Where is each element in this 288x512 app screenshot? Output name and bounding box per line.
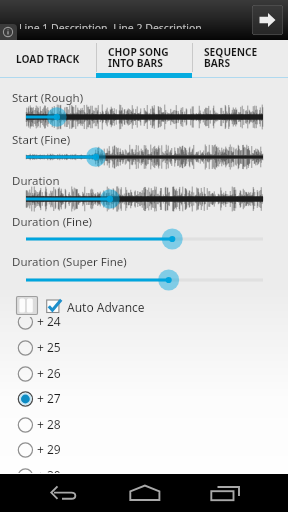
button[interactable]: + 25: [0, 335, 288, 361]
button[interactable]: Home: [110, 474, 188, 512]
staticText: + 28: [37, 416, 61, 432]
staticText: Start (Fine): [12, 132, 71, 148]
button[interactable]: Auto Advance: [44, 296, 154, 316]
button[interactable]: [0, 144, 288, 170]
staticText: + 25: [37, 339, 61, 355]
staticText: Duration (Fine): [12, 214, 93, 230]
button[interactable]: [0, 226, 288, 252]
staticText: Duration: [12, 173, 60, 189]
button[interactable]: Recents: [190, 474, 268, 512]
button[interactable]: + 27: [0, 386, 288, 412]
button[interactable]: + 29: [0, 437, 288, 463]
staticText: Line 1 Description, Line 2 Description: [19, 22, 202, 29]
staticText: + 29: [37, 441, 61, 457]
button[interactable]: + 30: [0, 463, 288, 473]
button[interactable]: [0, 186, 288, 212]
staticText: Duration (Super Fine): [12, 254, 127, 270]
button[interactable]: Pause: [16, 296, 38, 315]
button[interactable]: CHOP SONG INTO BARS: [96, 40, 192, 78]
staticText: CHOP SONG INTO BARS: [108, 45, 169, 70]
staticText: LOAD TRACK: [16, 52, 80, 66]
button[interactable]: LOAD TRACK: [0, 40, 96, 78]
staticText: + 30: [37, 467, 61, 473]
button[interactable]: Back: [24, 474, 102, 512]
staticText: Auto Advance: [67, 299, 145, 315]
staticText: SEQUENCE BARS: [204, 45, 258, 70]
staticText: + 27: [37, 390, 61, 406]
button[interactable]: + 26: [0, 361, 288, 387]
button[interactable]: Info: [0, 24, 17, 40]
button[interactable]: SEQUENCE BARS: [192, 40, 288, 78]
button[interactable]: Next: [252, 5, 283, 35]
button[interactable]: + 28: [0, 412, 288, 438]
button[interactable]: [0, 104, 288, 130]
staticText: + 24: [37, 317, 61, 329]
button[interactable]: [0, 267, 288, 293]
button[interactable]: + 24: [0, 317, 288, 335]
staticText: + 26: [37, 365, 61, 381]
staticText: Start (Rough): [12, 90, 84, 106]
